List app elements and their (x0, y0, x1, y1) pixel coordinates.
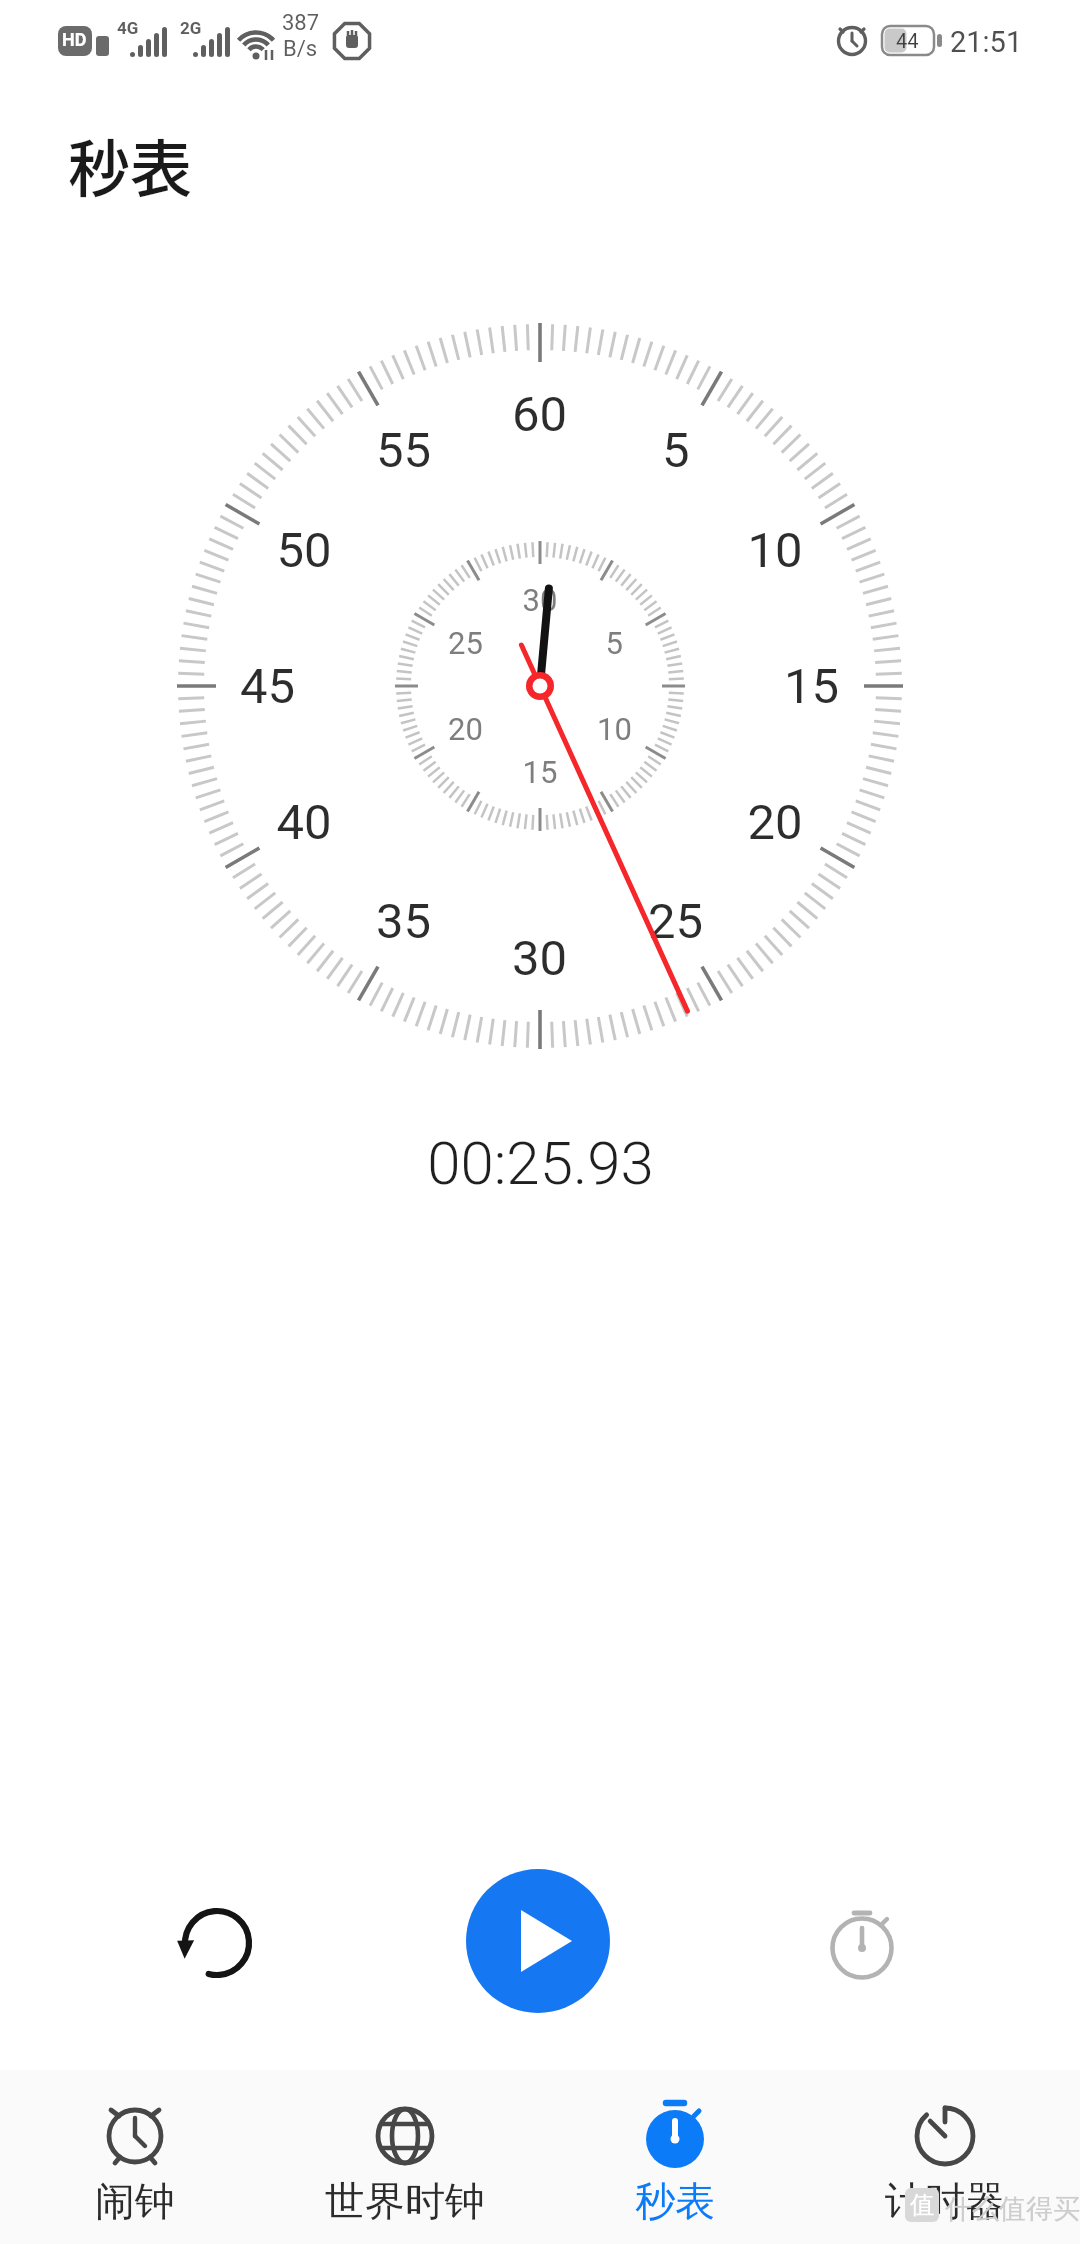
staticText: 值 (910, 2190, 934, 2220)
button[interactable]: 计时器 (810, 2070, 1080, 2244)
button[interactable]: 闹钟 (0, 2070, 270, 2244)
button[interactable]: 世界时钟 (270, 2070, 540, 2244)
staticText: 闹钟 (95, 2176, 175, 2226)
staticText: 秒表 (68, 120, 193, 210)
staticText: HD (62, 29, 87, 50)
staticText: 秒表 (635, 2176, 715, 2226)
staticText: 计时器 (885, 2176, 1005, 2226)
staticText: 2G (180, 18, 202, 38)
button[interactable] (807, 1886, 917, 1996)
staticText: B/s (283, 36, 318, 62)
staticText: 世界时钟 (325, 2176, 485, 2226)
staticText: 4G (117, 18, 139, 38)
button[interactable]: 秒表 (540, 2070, 810, 2244)
button[interactable] (162, 1886, 272, 1996)
button[interactable] (466, 1869, 610, 2013)
staticText: 387 (282, 10, 320, 36)
staticText: 44 (896, 29, 919, 52)
staticText: 什么值得买 (945, 2192, 1080, 2226)
staticText: 00:25.93 (427, 1128, 654, 1198)
staticText: 21:51 (950, 25, 1023, 59)
